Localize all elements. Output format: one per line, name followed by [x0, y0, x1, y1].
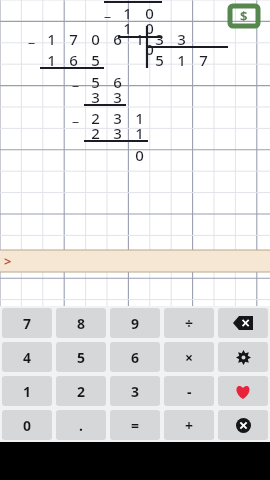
- button[interactable]: +: [164, 410, 214, 440]
- staticText: +: [185, 416, 194, 435]
- button[interactable]: 7: [2, 308, 52, 338]
- button[interactable]: Favorite: [218, 376, 268, 406]
- staticText: 0: [135, 145, 144, 164]
- button[interactable]: Purchase: [229, 5, 259, 27]
- button[interactable]: 6: [110, 342, 160, 372]
- button[interactable]: Settings: [218, 342, 268, 372]
- staticText: _: [28, 27, 35, 46]
- staticText: 3: [131, 382, 140, 401]
- staticText: 8: [77, 314, 86, 333]
- button[interactable]: -: [164, 376, 214, 406]
- staticText: 9: [131, 314, 140, 333]
- staticText: 3: [113, 108, 122, 127]
- staticText: 6: [69, 50, 78, 69]
- staticText: 5: [91, 50, 100, 69]
- button[interactable]: .: [56, 410, 106, 440]
- staticText: 1: [123, 18, 132, 37]
- staticText: 1: [123, 3, 132, 22]
- staticText: 5: [77, 348, 86, 367]
- staticText: 6: [131, 348, 140, 367]
- button[interactable]: =: [110, 410, 160, 440]
- staticText: ×: [185, 348, 194, 367]
- button[interactable]: 4: [2, 342, 52, 372]
- staticText: =: [131, 416, 140, 435]
- staticText: 1: [47, 50, 56, 69]
- staticText: 1: [135, 123, 144, 142]
- button[interactable]: 1: [2, 376, 52, 406]
- staticText: 7: [69, 29, 78, 48]
- button[interactable]: 3: [110, 376, 160, 406]
- staticText: 3: [113, 87, 122, 106]
- staticText: 3: [91, 87, 100, 106]
- staticText: $: [240, 7, 248, 25]
- staticText: 4: [23, 348, 32, 367]
- staticText: _: [72, 106, 79, 125]
- staticText: 1: [47, 29, 56, 48]
- staticText: 7: [199, 50, 208, 69]
- button[interactable]: 0: [2, 410, 52, 440]
- staticText: 1: [23, 382, 32, 401]
- button[interactable]: >: [0, 250, 270, 272]
- staticText: _: [104, 1, 111, 20]
- staticText: _: [72, 70, 79, 89]
- staticText: -: [187, 382, 192, 401]
- staticText: ÷: [185, 314, 194, 333]
- staticText: 7: [23, 314, 32, 333]
- button[interactable]: 5: [56, 342, 106, 372]
- staticText: 0: [145, 18, 154, 37]
- staticText: 0: [23, 416, 32, 435]
- button[interactable]: 9: [110, 308, 160, 338]
- button[interactable]: Backspace: [218, 308, 268, 338]
- button[interactable]: ÷: [164, 308, 214, 338]
- button[interactable]: Clear: [218, 410, 268, 440]
- staticText: 0: [145, 39, 154, 58]
- staticText: .: [79, 416, 83, 435]
- staticText: 2: [91, 123, 100, 142]
- staticText: 1: [135, 108, 144, 127]
- staticText: >: [4, 252, 12, 270]
- button[interactable]: 2: [56, 376, 106, 406]
- staticText: 2: [91, 108, 100, 127]
- staticText: 2: [77, 382, 86, 401]
- staticText: 3: [113, 123, 122, 142]
- staticText: 0: [91, 29, 100, 48]
- staticText: 1: [135, 29, 144, 48]
- button[interactable]: ×: [164, 342, 214, 372]
- staticText: 6: [113, 72, 122, 91]
- staticText: 5: [155, 50, 164, 69]
- staticText: 3: [177, 29, 186, 48]
- staticText: 0: [145, 3, 154, 22]
- staticText: 5: [91, 72, 100, 91]
- staticText: 1: [177, 50, 186, 69]
- button[interactable]: 8: [56, 308, 106, 338]
- staticText: 6: [113, 29, 122, 48]
- staticText: 3: [155, 29, 164, 48]
